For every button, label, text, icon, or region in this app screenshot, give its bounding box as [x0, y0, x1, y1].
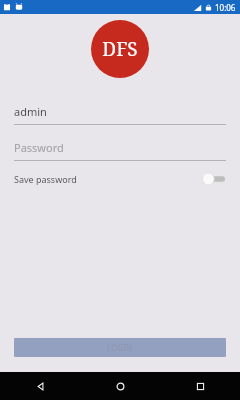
staticText: admin — [14, 104, 47, 119]
staticText: Save password — [14, 173, 77, 185]
staticText: 10:06 — [215, 2, 236, 13]
button[interactable]: Save password toggle — [202, 172, 226, 186]
button[interactable]: Recent apps — [160, 372, 240, 400]
button[interactable]: Save password — [14, 170, 226, 188]
button[interactable]: Back — [0, 372, 80, 400]
staticText: LOGIN — [107, 342, 133, 353]
button[interactable]: admin — [14, 104, 226, 125]
staticText: Password — [14, 140, 64, 155]
button[interactable]: Password — [14, 140, 226, 161]
staticText: DFS — [102, 36, 138, 62]
button[interactable]: Home — [80, 372, 160, 400]
